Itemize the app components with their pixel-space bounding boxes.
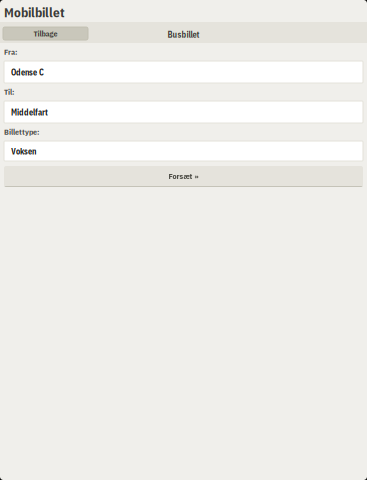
staticText: Voksen [11, 146, 36, 157]
staticText: Odense C [11, 67, 44, 78]
staticText: Fra: [4, 47, 17, 57]
staticText: Til: [4, 87, 14, 97]
staticText: Middelfart [11, 107, 48, 118]
button[interactable]: Tilbage [3, 27, 88, 40]
staticText: Billettype: [4, 127, 39, 137]
staticText: Mobilbillet [4, 4, 65, 21]
button[interactable]: Odense C [4, 61, 363, 83]
button[interactable]: Middelfart [4, 101, 363, 123]
button[interactable]: Voksen [4, 141, 363, 161]
button[interactable]: Forsæt » [4, 166, 363, 187]
staticText: Tilbage [33, 28, 57, 39]
staticText: Forsæt » [168, 171, 198, 181]
staticText: Busbillet [167, 29, 199, 40]
